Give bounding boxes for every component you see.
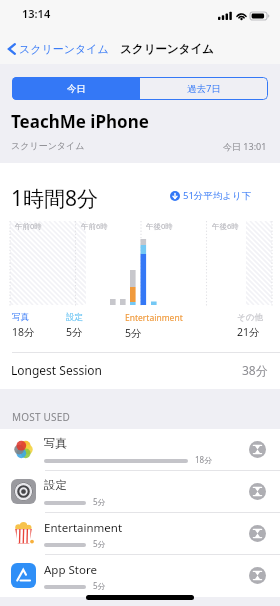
button[interactable]: Entertainment <box>0 513 280 554</box>
staticText: TeachMe iPhone <box>11 110 149 133</box>
button[interactable]: スクリーンタイム <box>5 41 109 57</box>
staticText: 設定 <box>66 312 83 323</box>
button[interactable]: 今日 <box>12 77 140 100</box>
staticText: 5分 <box>125 326 142 340</box>
staticText: 5分 <box>93 580 106 591</box>
staticText: MOST USED <box>12 410 70 424</box>
staticText: 午後6時 <box>212 221 239 231</box>
staticText: スクリーンタイム <box>19 42 109 56</box>
staticText: 21分 <box>237 325 260 339</box>
button[interactable]: 設定 <box>0 471 280 512</box>
button[interactable]: Set app limit <box>249 567 266 584</box>
button[interactable]: 過去7日 <box>140 77 268 100</box>
staticText: 5分 <box>66 325 83 339</box>
button[interactable]: Longest Session <box>11 353 268 389</box>
staticText: 5分 <box>93 538 106 549</box>
staticText: 1時間8分 <box>11 184 99 213</box>
staticText: 51分平均より下 <box>183 189 252 202</box>
staticText: スクリーンタイム <box>120 42 214 56</box>
staticText: 18分 <box>195 454 213 465</box>
staticText: 午前0時 <box>15 221 42 231</box>
staticText: 写真 <box>12 312 29 323</box>
staticText: 13:14 <box>22 6 51 21</box>
button[interactable]: Set app limit <box>249 483 266 500</box>
staticText: 5分 <box>93 496 106 507</box>
button[interactable]: Set app limit <box>249 441 266 458</box>
staticText: App Store <box>44 562 97 578</box>
button[interactable]: Set app limit <box>249 525 266 542</box>
staticText: 今日 13:01 <box>223 140 267 152</box>
staticText: スクリーンタイム <box>11 140 85 151</box>
button[interactable]: 写真 <box>0 429 280 470</box>
staticText: 午前6時 <box>81 221 108 231</box>
staticText: Longest Session <box>11 362 102 378</box>
staticText: Entertainment <box>125 312 183 324</box>
staticText: 38分 <box>242 362 268 378</box>
staticText: Entertainment <box>44 520 123 536</box>
staticText: 午後0時 <box>146 221 173 231</box>
staticText: 過去7日 <box>187 82 221 95</box>
staticText: 写真 <box>44 436 67 450</box>
staticText: 設定 <box>44 478 67 492</box>
staticText: その他 <box>237 312 263 323</box>
staticText: 18分 <box>12 325 35 339</box>
staticText: 今日 <box>67 83 86 95</box>
button[interactable]: App Store <box>0 555 280 596</box>
